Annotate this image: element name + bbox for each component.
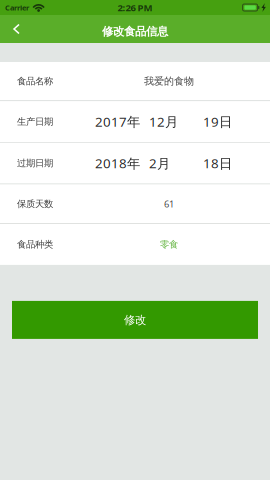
button[interactable]: 过期日期 — [0, 143, 270, 184]
staticText: 食品种类 — [17, 238, 53, 250]
button[interactable]: Back — [0, 15, 33, 43]
button[interactable]: 保质天数 — [0, 184, 270, 223]
staticText: 19日 — [203, 112, 232, 131]
staticText: 2017年 — [95, 112, 140, 131]
staticText: 我爱的食物 — [144, 75, 194, 88]
button[interactable]: 食品名称 — [0, 62, 270, 100]
staticText: Carrier — [5, 2, 29, 13]
staticText: 保质天数 — [17, 198, 53, 210]
staticText: 食品名称 — [17, 75, 53, 87]
staticText: 修改 — [124, 313, 146, 327]
button[interactable]: 食品种类 — [0, 224, 270, 265]
staticText: 过期日期 — [17, 157, 53, 169]
button[interactable]: 修改 — [0, 301, 270, 339]
staticText: 18日 — [203, 154, 232, 172]
button[interactable]: 生产日期 — [0, 101, 270, 142]
staticText: 2:26 PM — [117, 1, 152, 14]
staticText: 2018年 — [95, 154, 140, 172]
staticText: 12月 — [149, 112, 178, 131]
staticText: 生产日期 — [17, 116, 53, 127]
staticText: 零食 — [160, 238, 178, 250]
staticText: 61 — [164, 197, 174, 210]
staticText: 修改食品信息 — [102, 24, 168, 39]
staticText: 2月 — [149, 154, 170, 172]
